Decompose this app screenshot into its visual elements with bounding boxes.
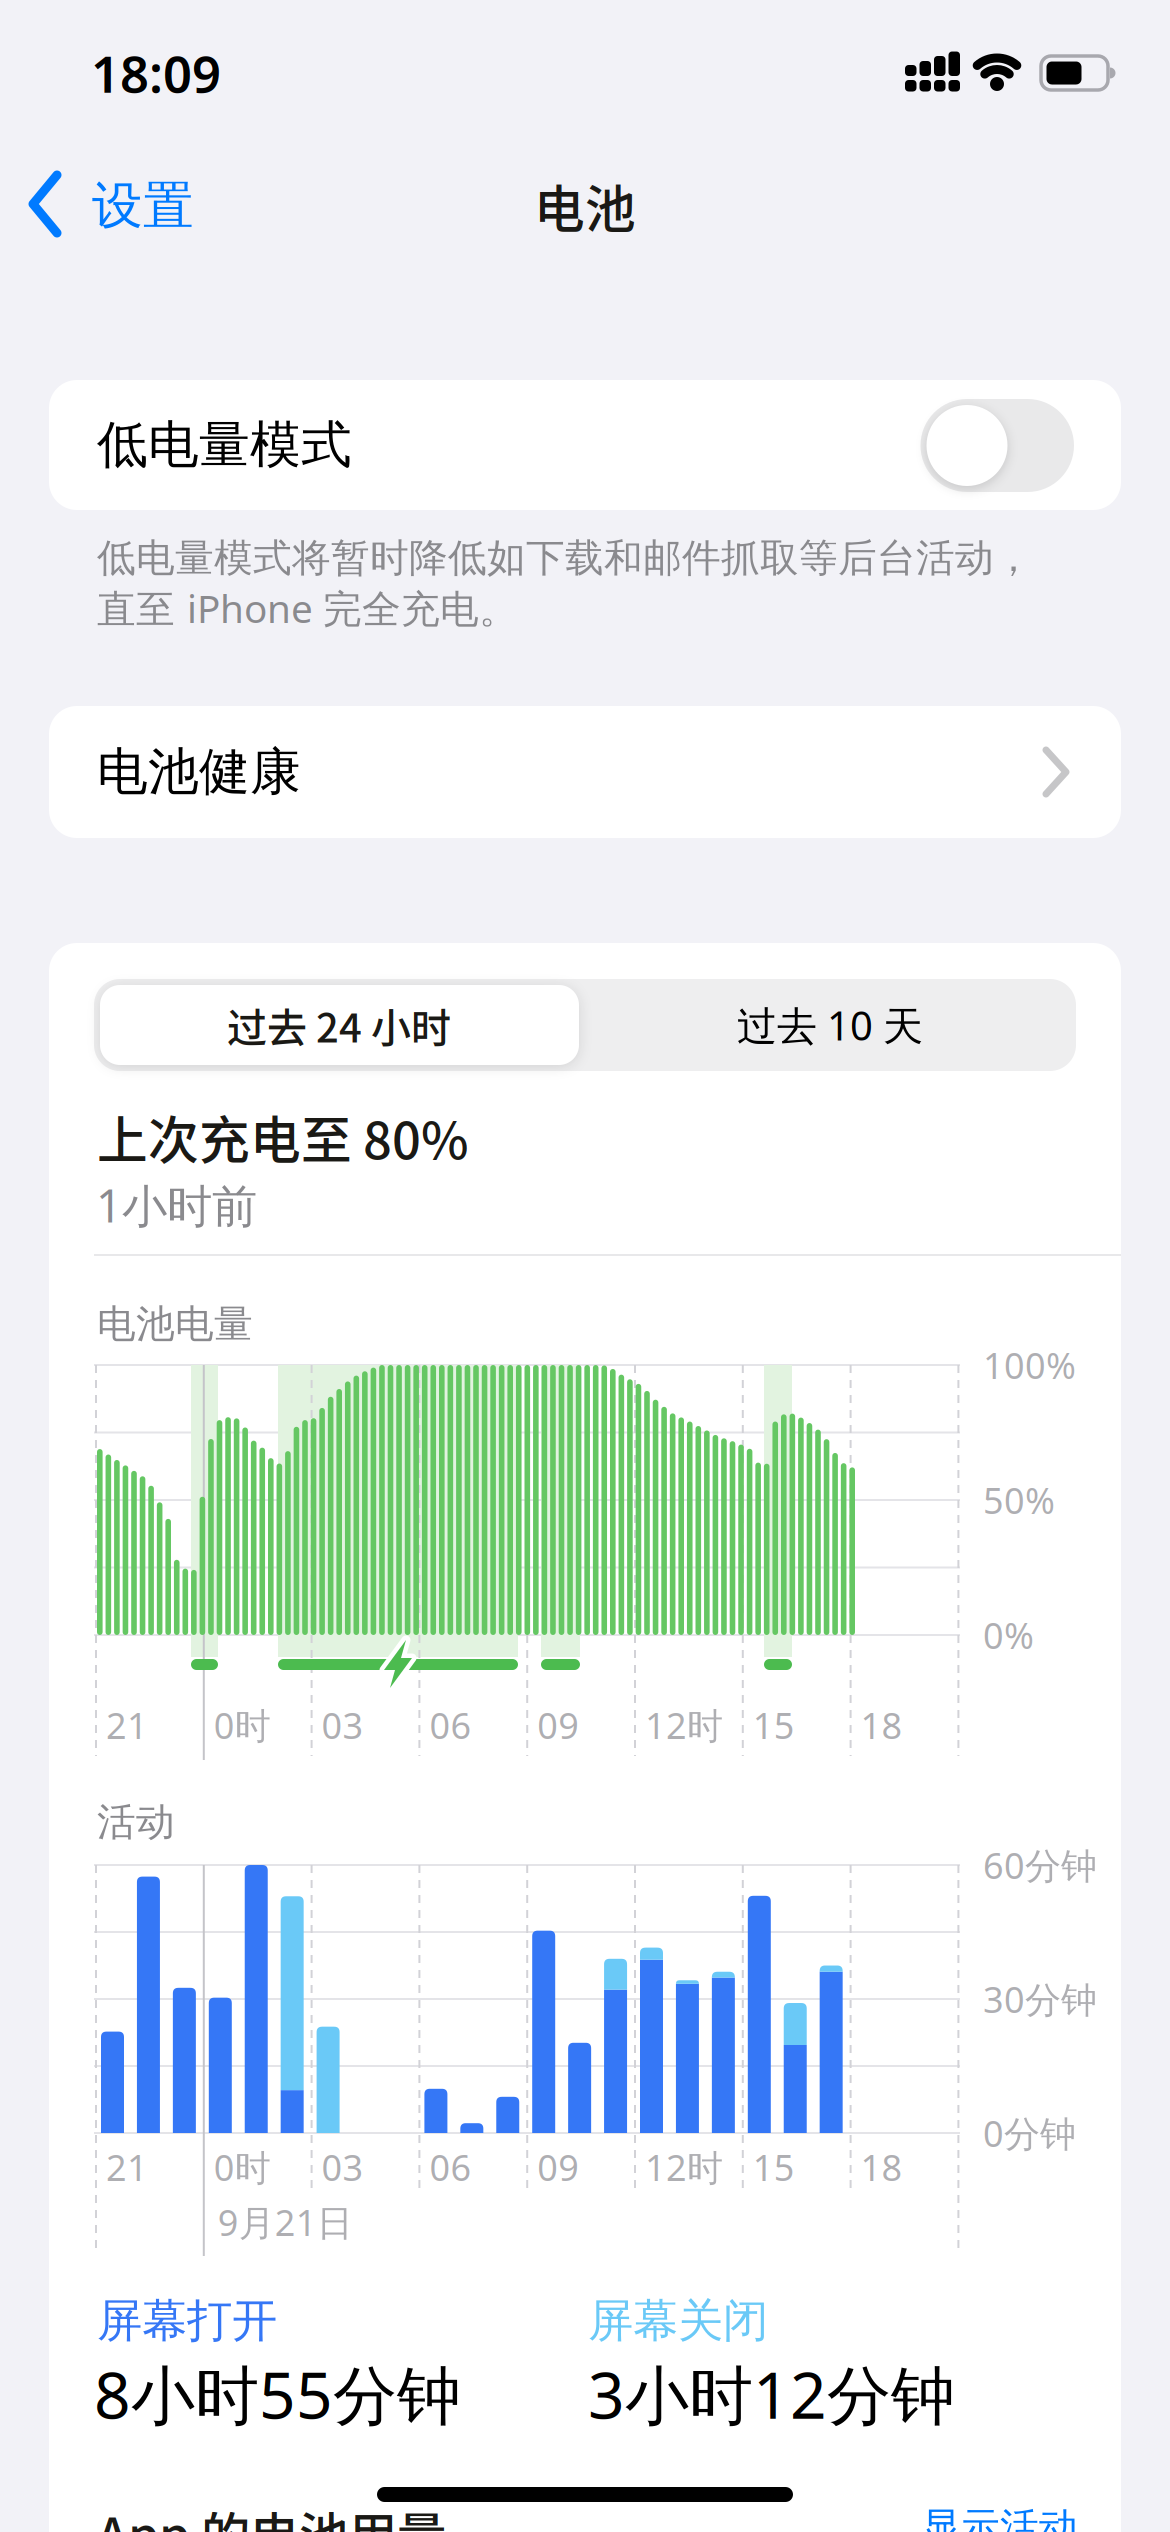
staticText: 50% [983, 1476, 1055, 1524]
staticText: 30分钟 [983, 1975, 1097, 2023]
staticText: 1小时前 [96, 1175, 257, 1235]
staticText: 9月21日 [218, 2198, 353, 2246]
staticText: 09 [537, 1701, 579, 1749]
staticText: 12时 [645, 1701, 723, 1749]
staticText: 电池健康 [97, 741, 301, 803]
staticText: 03 [322, 1701, 364, 1749]
staticText: 09 [537, 2143, 579, 2191]
staticText: 屏幕关闭 [588, 2293, 768, 2349]
staticText: 18:09 [91, 39, 221, 107]
staticText: 8小时55分钟 [94, 2351, 461, 2436]
staticText: 显示活动 [922, 2503, 1078, 2532]
staticText: 设置 [92, 175, 194, 237]
staticText: 18 [861, 1701, 903, 1749]
staticText: 过去 24 小时 [227, 996, 451, 1054]
staticText: 过去 10 天 [737, 998, 923, 1051]
staticText: 15 [753, 1701, 795, 1749]
staticText: 电池电量 [97, 1300, 253, 1348]
staticText: 21 [106, 1701, 148, 1749]
staticText: 0% [983, 1611, 1034, 1659]
staticText: 15 [753, 2143, 795, 2191]
staticText: 上次充电至 80% [97, 1100, 469, 1174]
staticText: 活动 [97, 1798, 175, 1846]
staticText: 屏幕打开 [97, 2293, 277, 2349]
staticText: 0分钟 [983, 2109, 1076, 2157]
staticText: 0时 [214, 1701, 271, 1749]
staticText: 0时 [214, 2143, 271, 2191]
staticText: 电池 [534, 169, 636, 243]
staticText: 06 [429, 1701, 471, 1749]
staticText: 60分钟 [983, 1841, 1097, 1889]
staticText: 21 [106, 2143, 148, 2191]
staticText: 18 [861, 2143, 903, 2191]
staticText: 06 [429, 2143, 471, 2191]
staticText: 低电量模式 [97, 414, 352, 476]
staticText: 100% [983, 1341, 1076, 1389]
staticText: 直至 iPhone 完全充电。 [97, 582, 518, 634]
staticText: 03 [322, 2143, 364, 2191]
staticText: 低电量模式将暂时降低如下载和邮件抓取等后台活动， [97, 534, 1033, 582]
staticText: 3小时12分钟 [588, 2351, 955, 2436]
staticText: 12时 [645, 2143, 723, 2191]
staticText: App 的电池用量 [97, 2496, 446, 2532]
